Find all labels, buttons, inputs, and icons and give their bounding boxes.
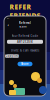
staticText: AB12CD34	[17, 40, 33, 43]
staticText: GET MORE REWARDS	[12, 21, 38, 25]
button[interactable]: Back	[6, 23, 10, 27]
staticText: Share	[21, 62, 29, 66]
button[interactable]: Share	[17, 62, 32, 66]
staticText: Invite & earn rewards	[11, 49, 39, 52]
staticText: 9:41	[6, 17, 9, 19]
staticText: Copy link	[5, 54, 18, 58]
staticText: Referral Team	[19, 21, 31, 28]
staticText: Your Referral Code	[11, 34, 38, 38]
staticText: REFER FRIENDS	[9, 2, 40, 20]
